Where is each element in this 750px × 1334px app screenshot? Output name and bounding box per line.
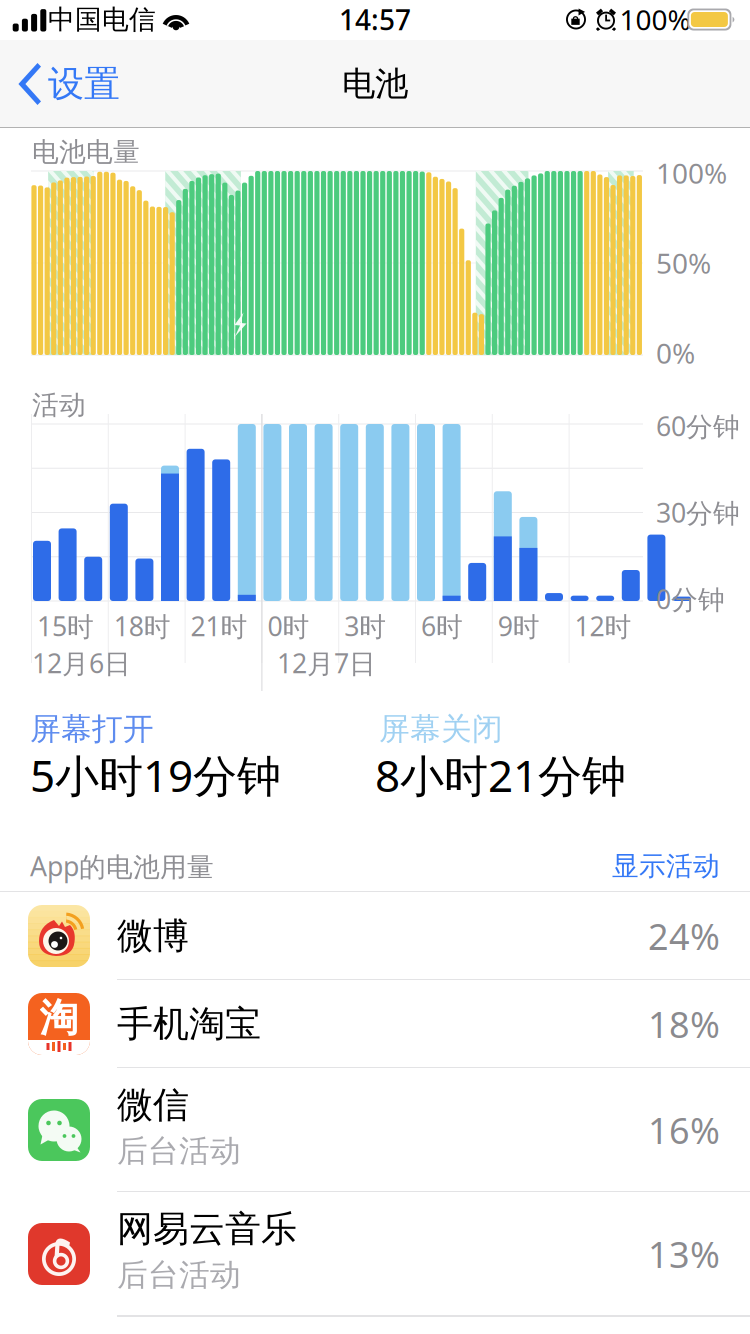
staticText: 9时 [498, 608, 540, 644]
staticText: 微博 [117, 914, 189, 958]
staticText: 3时 [344, 608, 386, 644]
staticText: 6时 [421, 608, 463, 644]
staticText: 100% [656, 154, 727, 192]
staticText: 0% [656, 334, 695, 372]
staticText: 后台活动 [117, 1256, 241, 1294]
staticText: 30分钟 [656, 495, 740, 530]
button[interactable]: 淘 [0, 980, 750, 1068]
staticText: App的电池用量 [30, 848, 214, 884]
staticText: 电池 [342, 63, 408, 104]
staticText: 0时 [267, 608, 309, 644]
staticText: 13% [648, 1230, 720, 1278]
staticText: 24% [648, 912, 720, 960]
staticText: 0分钟 [656, 581, 725, 617]
staticText: 手机淘宝 [117, 1002, 261, 1046]
staticText: 21时 [191, 608, 248, 644]
staticText: 活动 [32, 389, 86, 421]
staticText: 8小时21分钟 [375, 746, 626, 804]
staticText: 后台活动 [117, 1132, 241, 1170]
staticText: 50% [656, 244, 711, 282]
staticText: 屏幕打开 [30, 710, 154, 748]
staticText: 网易云音乐 [117, 1207, 297, 1251]
staticText: 60分钟 [656, 408, 740, 444]
staticText: 微信 [117, 1083, 189, 1127]
staticText: 中国电信 [48, 3, 156, 36]
staticText: 12月7日 [277, 645, 376, 681]
button[interactable]: 微博 [0, 892, 750, 980]
button[interactable]: 网易云音乐 [0, 1192, 750, 1316]
staticText: 18时 [114, 608, 171, 644]
staticText: 显示活动 [612, 850, 720, 882]
staticText: 14:57 [339, 1, 411, 38]
staticText: 16% [648, 1106, 720, 1154]
staticText: 屏幕关闭 [379, 710, 503, 748]
button[interactable]: 设置 [0, 40, 197, 128]
staticText: 设置 [48, 62, 120, 106]
staticText: 100% [619, 1, 690, 38]
staticText: 12时 [575, 608, 632, 644]
button[interactable]: 显示活动 [560, 841, 720, 891]
staticText: 5小时19分钟 [30, 746, 281, 804]
staticText: 18% [648, 1000, 720, 1048]
button[interactable]: 微信 [0, 1068, 750, 1192]
staticText: 电池电量 [32, 136, 140, 168]
staticText: 淘 [39, 994, 78, 1042]
staticText: 12月6日 [32, 645, 131, 681]
staticText: 15时 [37, 608, 94, 644]
